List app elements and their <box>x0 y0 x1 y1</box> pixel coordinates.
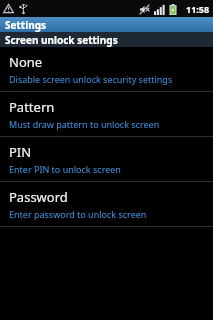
staticText: None <box>9 53 43 71</box>
staticText: Pattern <box>9 98 55 116</box>
staticText: Must draw pattern to unlock screen <box>9 118 160 130</box>
staticText: Enter password to unlock screen <box>9 208 147 220</box>
staticText: Enter PIN to unlock screen <box>9 163 121 175</box>
other: Battery <box>169 4 177 15</box>
button[interactable]: None <box>0 47 213 91</box>
staticText: Disable screen unlock security settings <box>9 73 173 85</box>
button[interactable]: Pattern <box>0 92 213 136</box>
staticText: 11:58 <box>186 3 210 15</box>
other: Signal strength <box>154 4 165 15</box>
staticText: Password <box>9 188 68 206</box>
staticText: Screen unlock settings <box>5 33 118 47</box>
other: Warning <box>3 3 14 14</box>
button[interactable]: Password <box>0 182 213 226</box>
staticText: PIN <box>9 143 32 161</box>
other: USB connected <box>18 3 29 14</box>
staticText: Settings <box>5 18 46 32</box>
other: Silent mode <box>139 4 150 15</box>
button[interactable]: PIN <box>0 137 213 181</box>
